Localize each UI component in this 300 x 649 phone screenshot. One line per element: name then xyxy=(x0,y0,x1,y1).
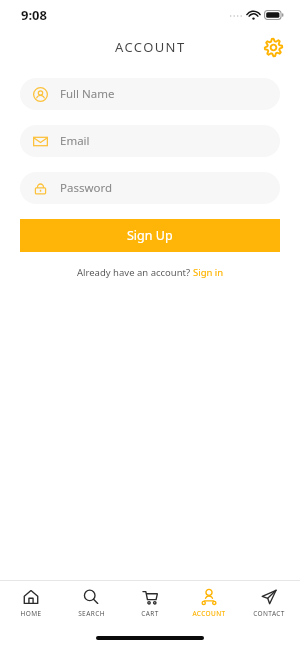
button[interactable]: HOME xyxy=(3,586,59,621)
staticText: ACCOUNT xyxy=(115,38,186,56)
staticText: 9:08 xyxy=(21,6,47,24)
staticText: ACCOUNT xyxy=(192,609,226,618)
button[interactable]: CART xyxy=(122,586,178,621)
staticText: Sign Up xyxy=(127,227,173,244)
staticText: Full Name xyxy=(60,86,115,102)
staticText: CART xyxy=(141,609,159,618)
staticText: SEARCH xyxy=(78,609,105,618)
button[interactable]: Password xyxy=(20,172,280,204)
staticText: CONTACT xyxy=(253,609,285,618)
staticText: Email xyxy=(60,133,90,149)
button[interactable]: Email xyxy=(20,125,280,157)
staticText: Already have an account? xyxy=(77,266,193,279)
button[interactable]: SEARCH xyxy=(63,586,119,621)
staticText: Password xyxy=(60,180,113,196)
button[interactable]: CONTACT xyxy=(241,586,297,621)
button[interactable]: Full Name xyxy=(20,78,280,110)
button[interactable]: Sign Up xyxy=(20,219,280,252)
button[interactable]: Settings xyxy=(258,32,288,62)
button[interactable]: ACCOUNT xyxy=(181,586,237,621)
staticText: HOME xyxy=(20,609,42,618)
staticText: Sign in xyxy=(193,266,224,279)
button[interactable]: Sign in xyxy=(193,266,224,279)
